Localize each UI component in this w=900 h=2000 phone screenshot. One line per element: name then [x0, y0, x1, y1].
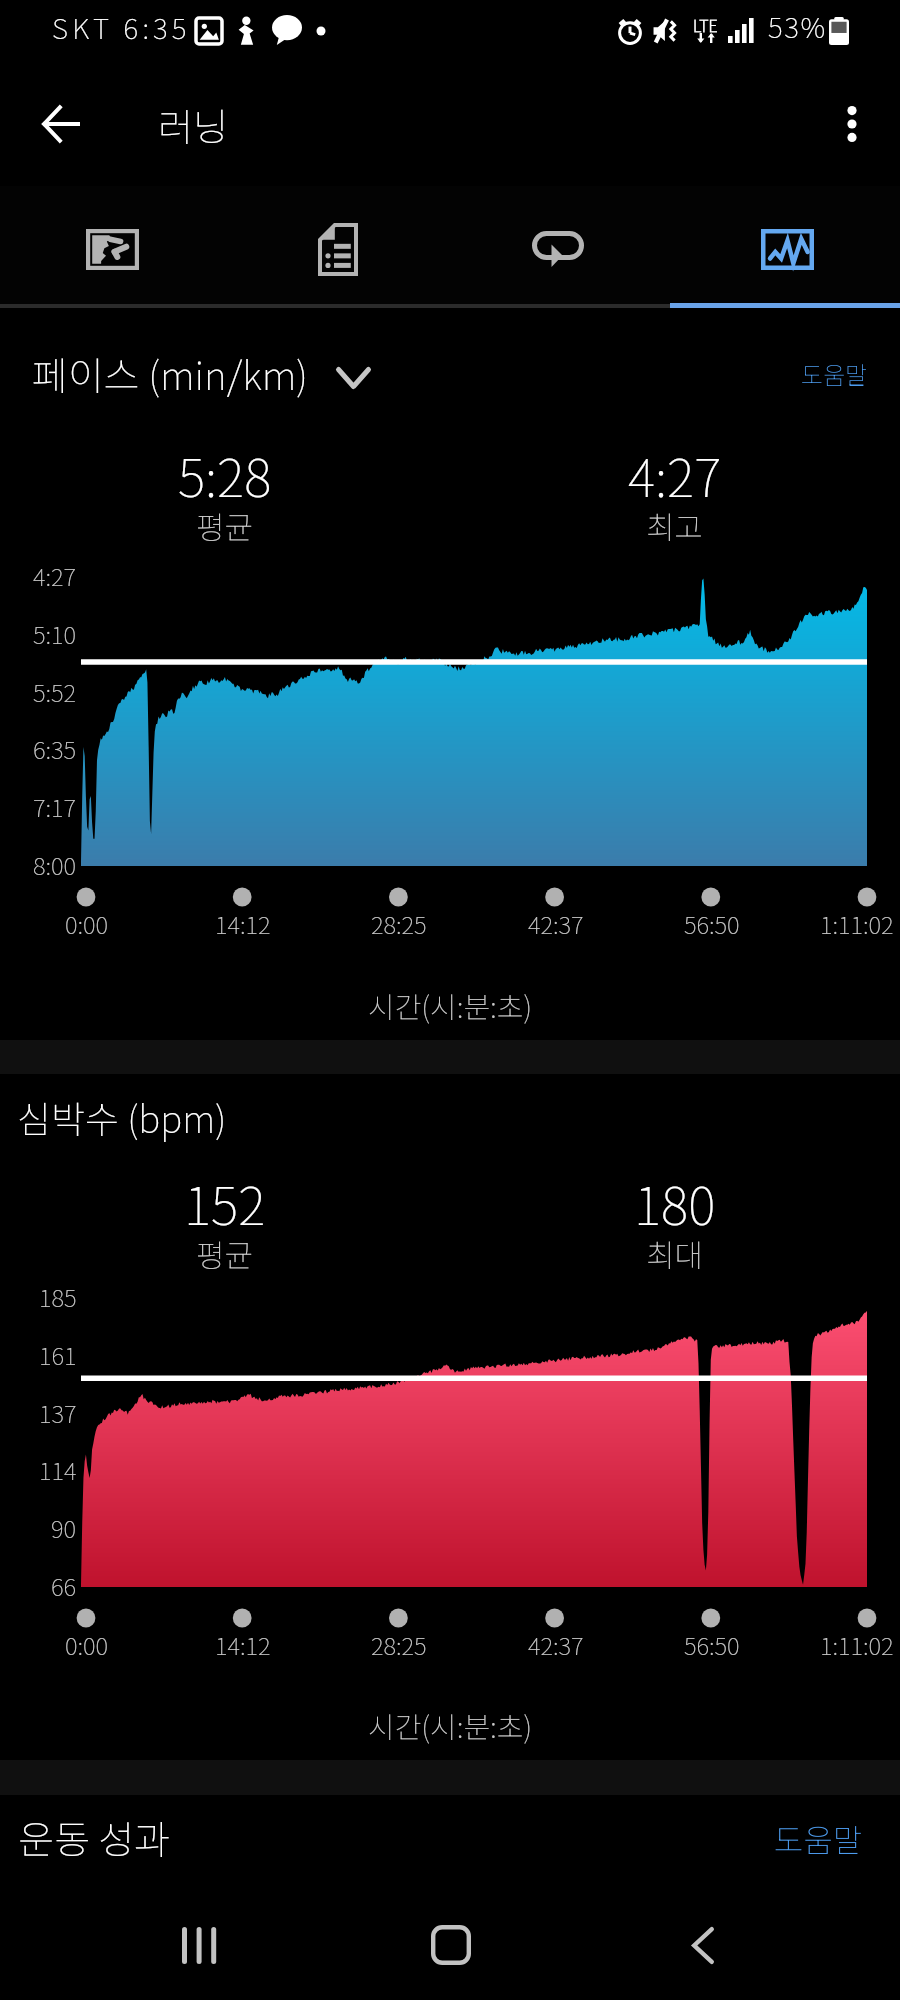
staticText: 도움말 — [774, 1815, 863, 1861]
staticText: 137 — [39, 1395, 77, 1430]
staticText: 시간(시:분:초) — [368, 1704, 533, 1746]
staticText: 도움말 — [801, 356, 868, 391]
staticText: 14:12 — [215, 1627, 271, 1662]
staticText: 152 — [184, 1165, 266, 1240]
staticText: 14:12 — [215, 906, 271, 941]
button[interactable]: Change metric — [331, 356, 375, 400]
staticText: 56:50 — [684, 1627, 740, 1662]
staticText: 7:17 — [33, 789, 77, 824]
staticText: 평균 — [196, 503, 254, 548]
staticText: 1:11:02 — [820, 1627, 894, 1662]
staticText: 0:00 — [65, 1627, 109, 1662]
staticText: 시간(시:분:초) — [368, 984, 533, 1026]
button[interactable]: Map — [0, 186, 225, 302]
staticText: 6:35 — [33, 731, 77, 766]
staticText: 56:50 — [684, 906, 740, 941]
staticText: 5:28 — [178, 437, 272, 512]
button[interactable]: Recent apps — [143, 1907, 255, 1983]
staticText: 운동 성과 — [18, 1809, 171, 1865]
staticText: 53% — [768, 6, 827, 47]
staticText: 5:52 — [33, 674, 77, 709]
staticText: 페이스 (min/km) — [32, 345, 308, 401]
staticText: SKT 6:35 — [52, 7, 191, 48]
button[interactable]: Home — [395, 1907, 507, 1983]
staticText: 161 — [39, 1337, 77, 1372]
staticText: 90 — [51, 1510, 77, 1545]
staticText: 180 — [634, 1165, 716, 1240]
button[interactable]: Details — [225, 186, 450, 302]
staticText: 42:37 — [528, 906, 584, 941]
staticText: 42:37 — [528, 1627, 584, 1662]
staticText: 러닝 — [158, 97, 228, 152]
staticText: 1:11:02 — [820, 906, 894, 941]
staticText: 심박수 (bpm) — [17, 1090, 227, 1144]
staticText: LTE — [693, 13, 718, 36]
staticText: 최대 — [646, 1231, 704, 1276]
staticText: 0:00 — [65, 906, 109, 941]
staticText: 5:10 — [33, 616, 77, 651]
button[interactable]: Charts — [675, 186, 900, 302]
button[interactable]: Back — [31, 95, 91, 152]
button[interactable]: Laps — [450, 186, 675, 302]
staticText: 4:27 — [628, 437, 722, 512]
button[interactable]: 도움말 — [774, 1815, 863, 1861]
button[interactable]: 도움말 — [801, 356, 868, 391]
staticText: 66 — [51, 1568, 77, 1603]
staticText: 28:25 — [371, 906, 427, 941]
staticText: 28:25 — [371, 1627, 427, 1662]
staticText: 평균 — [196, 1231, 254, 1276]
staticText: 8:00 — [33, 847, 77, 882]
staticText: 114 — [39, 1452, 77, 1487]
staticText: 4:27 — [33, 558, 77, 593]
button[interactable]: More options — [818, 90, 886, 158]
staticText: 최고 — [646, 503, 704, 548]
staticText: 185 — [39, 1279, 77, 1314]
button[interactable]: Back — [647, 1907, 759, 1983]
